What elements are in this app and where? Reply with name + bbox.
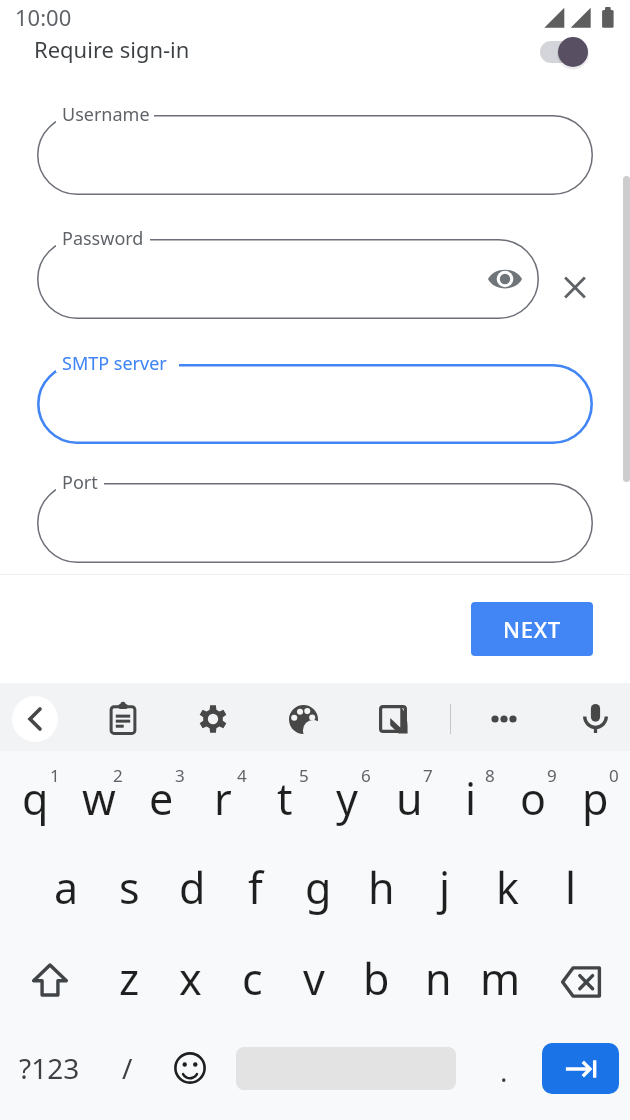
button[interactable]: Back (12, 696, 58, 742)
button[interactable]: r (192, 747, 254, 837)
button[interactable]: ?123 (8, 1015, 90, 1120)
staticText: f (248, 858, 263, 917)
button[interactable]: Username (37, 115, 593, 195)
staticText: 2 (113, 764, 123, 787)
button[interactable]: Shift (0, 931, 99, 1021)
button[interactable]: . (475, 1015, 533, 1120)
staticText: w (82, 769, 116, 828)
button[interactable]: d (161, 839, 224, 929)
button[interactable]: g (287, 839, 350, 929)
button[interactable]: j (413, 839, 476, 929)
staticText: Require sign-in (34, 34, 190, 64)
staticText: x (179, 949, 202, 1008)
button[interactable]: Require sign-in toggle (532, 32, 594, 72)
button[interactable]: q (4, 747, 67, 837)
staticText: l (565, 858, 577, 917)
staticText: ?123 (19, 1049, 80, 1087)
button[interactable]: Port (37, 483, 593, 563)
staticText: / (122, 1049, 133, 1087)
button[interactable]: o (502, 747, 564, 837)
button[interactable]: n (407, 931, 469, 1021)
button[interactable]: Theme (281, 697, 325, 741)
staticText: Password (62, 226, 144, 251)
button[interactable]: k (476, 839, 539, 929)
button[interactable]: z (99, 931, 160, 1021)
button[interactable]: Emoji (158, 1015, 222, 1120)
button[interactable]: w (67, 747, 130, 837)
button[interactable]: y (316, 747, 378, 837)
staticText: c (242, 949, 263, 1008)
staticText: p (582, 769, 609, 828)
staticText: y (336, 769, 358, 828)
staticText: Username (62, 102, 150, 127)
staticText: g (305, 858, 332, 917)
staticText: i (465, 769, 477, 828)
staticText: a (54, 858, 79, 917)
button[interactable]: h (350, 839, 413, 929)
button[interactable]: t (254, 747, 316, 837)
button[interactable]: i (440, 747, 502, 837)
staticText: t (277, 769, 293, 828)
staticText: j (439, 858, 451, 917)
button[interactable]: u (378, 747, 440, 837)
staticText: h (368, 858, 395, 917)
button[interactable]: f (224, 839, 287, 929)
button[interactable]: s (98, 839, 161, 929)
button[interactable]: Password (37, 239, 539, 319)
button[interactable]: Backspace (531, 931, 630, 1021)
staticText: q (22, 769, 49, 828)
button[interactable]: Clipboard (101, 697, 145, 741)
button[interactable]: m (469, 931, 531, 1021)
staticText: 1 (50, 764, 60, 787)
staticText: 6 (361, 764, 371, 787)
staticText: 8 (485, 764, 495, 787)
button[interactable]: SMTP server (37, 364, 593, 444)
button[interactable]: Settings (191, 697, 235, 741)
button[interactable]: b (345, 931, 407, 1021)
staticText: Port (62, 470, 98, 495)
staticText: 0 (609, 764, 619, 787)
button[interactable]: e (130, 747, 192, 837)
staticText: 9 (547, 764, 557, 787)
button[interactable]: p (564, 747, 626, 837)
button[interactable]: l (539, 839, 602, 929)
staticText: 3 (175, 764, 185, 787)
button[interactable]: Clear (553, 265, 597, 310)
staticText: o (520, 769, 547, 828)
staticText: u (396, 769, 423, 828)
staticText: e (149, 769, 174, 828)
staticText: n (425, 949, 452, 1008)
button[interactable]: Next field (542, 1043, 619, 1094)
staticText: k (496, 858, 519, 917)
staticText: b (363, 949, 390, 1008)
button[interactable]: Voice input (573, 696, 617, 740)
staticText: d (179, 858, 206, 917)
staticText: 10:00 (15, 2, 72, 32)
staticText: 5 (299, 764, 309, 787)
staticText: 7 (423, 764, 433, 787)
staticText: NEXT (503, 614, 561, 644)
staticText: z (119, 949, 140, 1008)
button[interactable]: More options (482, 697, 526, 741)
staticText: 4 (237, 764, 247, 787)
button[interactable]: a (34, 839, 98, 929)
staticText: s (119, 858, 140, 917)
staticText: . (500, 1052, 508, 1090)
staticText: r (214, 769, 232, 828)
staticText: SMTP server (62, 351, 167, 376)
button[interactable]: / (96, 1015, 158, 1120)
staticText: v (303, 949, 325, 1008)
button[interactable]: v (283, 931, 345, 1021)
staticText: m (480, 949, 521, 1008)
button[interactable]: Resize keyboard (371, 697, 415, 741)
button[interactable]: c (221, 931, 283, 1021)
button[interactable]: Show password (483, 257, 527, 301)
button[interactable]: x (160, 931, 221, 1021)
button[interactable]: NEXT (471, 602, 593, 656)
